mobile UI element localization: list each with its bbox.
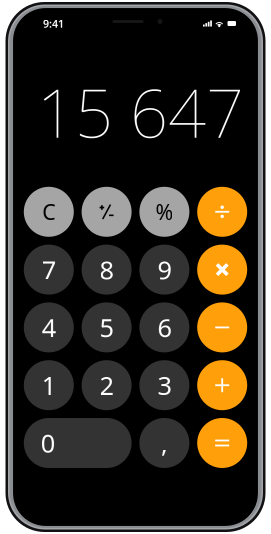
staticText: 15 647: [37, 68, 244, 156]
button[interactable]: Add: [197, 360, 247, 410]
button[interactable]: Equals: [197, 418, 247, 468]
staticText: 3: [157, 368, 171, 402]
button[interactable]: 9: [139, 245, 189, 295]
button[interactable]: 2: [82, 360, 132, 410]
staticText: C: [42, 198, 55, 226]
button[interactable]: Divide: [197, 187, 247, 237]
button[interactable]: Subtract: [197, 302, 247, 352]
staticText: 2: [100, 368, 114, 402]
staticText: 9: [157, 253, 171, 286]
button[interactable]: 1: [24, 360, 74, 410]
button[interactable]: 3: [139, 360, 189, 410]
button[interactable]: 8: [82, 245, 132, 295]
button[interactable]: 4: [24, 302, 74, 352]
button[interactable]: Clear: [24, 187, 74, 237]
button[interactable]: 0: [24, 418, 132, 468]
staticText: %: [155, 198, 173, 226]
button[interactable]: Percent: [139, 187, 189, 237]
staticText: 5: [100, 311, 114, 344]
button[interactable]: 5: [82, 302, 132, 352]
staticText: 6: [157, 311, 171, 344]
staticText: 1: [42, 368, 56, 402]
button[interactable]: Toggle sign: [82, 187, 132, 237]
staticText: 8: [100, 253, 114, 286]
staticText: 4: [42, 311, 56, 344]
staticText: ,: [161, 426, 168, 460]
button[interactable]: Decimal separator: [139, 418, 189, 468]
button[interactable]: 7: [24, 245, 74, 295]
button[interactable]: Multiply: [197, 245, 247, 295]
staticText: 7: [42, 253, 56, 286]
staticText: 0: [41, 426, 55, 460]
staticText: 9:41: [43, 16, 64, 31]
button[interactable]: 6: [139, 302, 189, 352]
